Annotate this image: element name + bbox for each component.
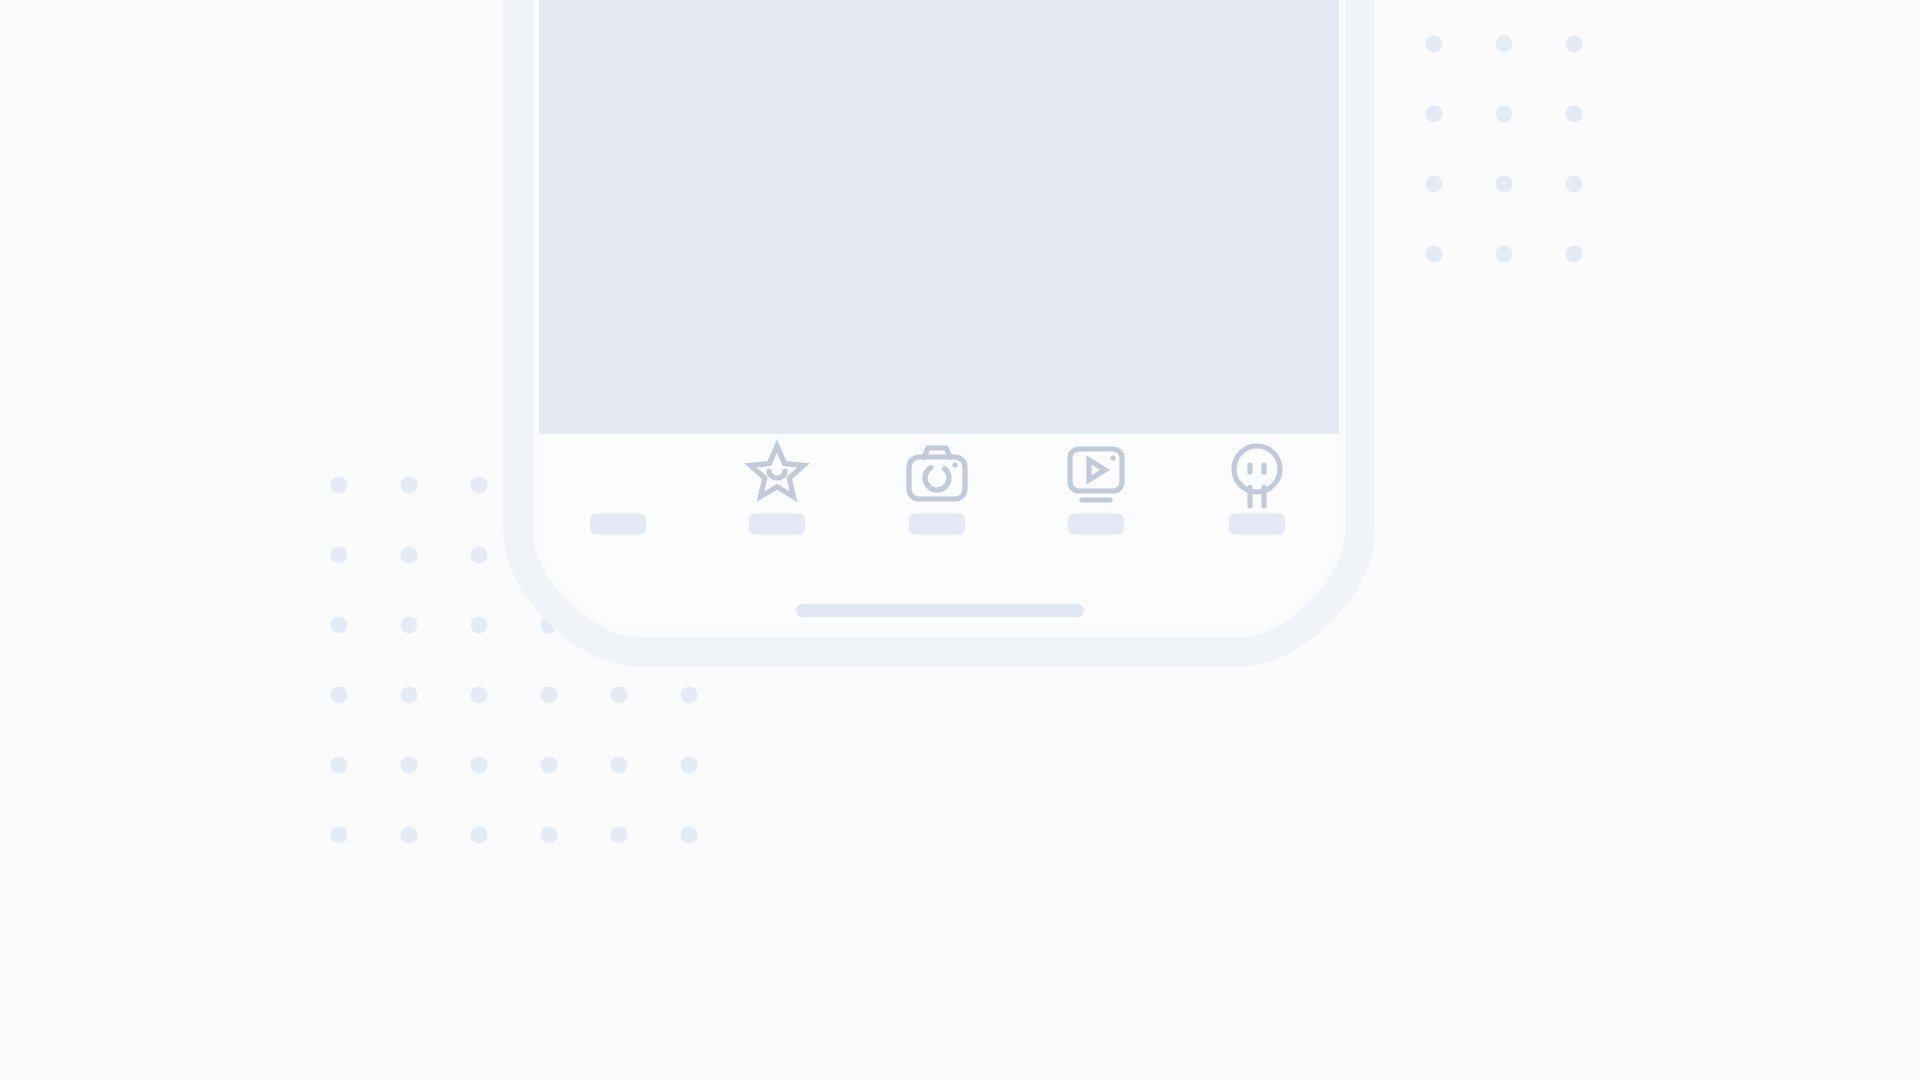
button[interactable]: Favourites xyxy=(705,440,849,544)
button[interactable]: Home xyxy=(546,440,690,544)
button[interactable]: Videos xyxy=(1024,440,1168,544)
button[interactable]: Camera xyxy=(865,440,1009,544)
button[interactable]: Profile xyxy=(1185,440,1329,544)
